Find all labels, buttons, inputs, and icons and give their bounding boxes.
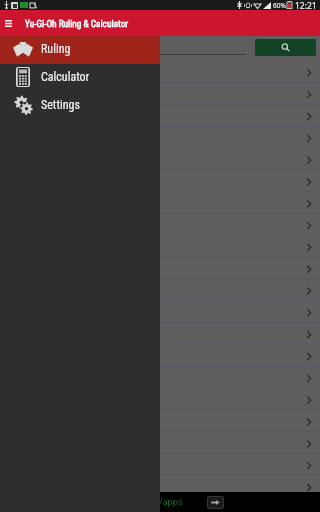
- button[interactable]: [0, 82, 320, 104]
- button[interactable]: [0, 390, 320, 412]
- button[interactable]: Settings: [0, 92, 160, 120]
- button[interactable]: [0, 346, 320, 368]
- button[interactable]: [0, 236, 320, 258]
- button[interactable]: [0, 324, 320, 346]
- button[interactable]: Ruling: [0, 36, 160, 64]
- staticText: Yu-Gi-Oh Ruling & Calculator: [25, 18, 129, 29]
- button[interactable]: [0, 170, 320, 192]
- staticText: 12:21: [295, 0, 317, 10]
- button[interactable]: [0, 126, 320, 148]
- button[interactable]: [0, 104, 320, 126]
- button[interactable]: [0, 192, 320, 214]
- button[interactable]: [0, 258, 320, 280]
- staticText: Ruling: [41, 42, 71, 56]
- button[interactable]: [0, 412, 320, 434]
- staticText: Calculator: [41, 70, 90, 84]
- staticText: Settings: [41, 98, 80, 112]
- button[interactable]: [0, 148, 320, 170]
- button[interactable]: [0, 60, 320, 82]
- button[interactable]: [0, 214, 320, 236]
- button[interactable]: [0, 280, 320, 302]
- button[interactable]: Open navigation drawer: [0, 10, 17, 36]
- button[interactable]: Search: [255, 39, 316, 56]
- button[interactable]: [0, 302, 320, 324]
- button[interactable]: [0, 456, 320, 478]
- button[interactable]: [0, 368, 320, 390]
- staticText: 60%: [273, 1, 286, 10]
- button[interactable]: [0, 434, 320, 456]
- button[interactable]: [0, 478, 320, 500]
- button[interactable]: Go: [207, 496, 224, 509]
- button[interactable]: Calculator: [0, 64, 160, 92]
- staticText: /apps: [159, 497, 183, 508]
